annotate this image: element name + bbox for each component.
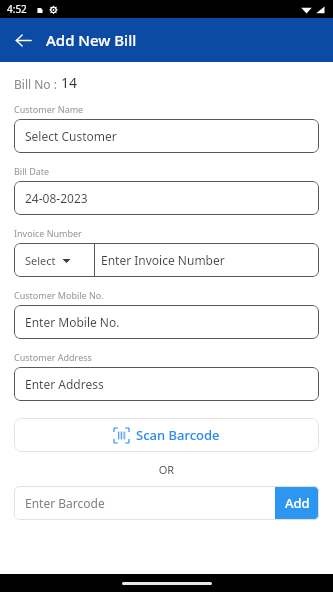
staticText: Bill Date [14,165,50,177]
staticText: Select Customer [25,128,117,144]
staticText: Enter Address [25,376,104,392]
button[interactable]: Enter Mobile No. [14,305,319,339]
button[interactable]: Enter Barcode [14,486,275,520]
staticText: Add [285,494,310,512]
button[interactable]: Back [8,25,38,55]
button[interactable]: Enter Address [14,367,319,401]
staticText: Enter Barcode [25,495,105,511]
staticText: 14 [61,73,78,92]
button[interactable]: Select [14,243,94,277]
staticText: Enter Invoice Number [101,252,225,268]
staticText: Invoice Number [14,227,82,239]
button[interactable]: Enter Invoice Number [95,243,319,277]
staticText: OR [0,462,333,477]
staticText: Customer Address [14,351,92,363]
button[interactable]: Add [275,486,319,520]
staticText: Enter Mobile No. [25,314,120,330]
staticText: Customer Mobile No. [14,289,104,301]
button[interactable]: 24-08-2023 [14,181,319,215]
staticText: Bill No : [14,76,61,92]
staticText: 24-08-2023 [25,190,88,206]
staticText: Add New Bill [46,30,137,50]
button[interactable]: Scan Barcode [14,418,319,452]
staticText: Scan Barcode [136,426,220,444]
staticText: 4:52 [7,2,27,16]
staticText: Select [25,253,56,268]
button[interactable]: Select Customer [14,119,319,153]
staticText: Customer Name [14,103,84,115]
